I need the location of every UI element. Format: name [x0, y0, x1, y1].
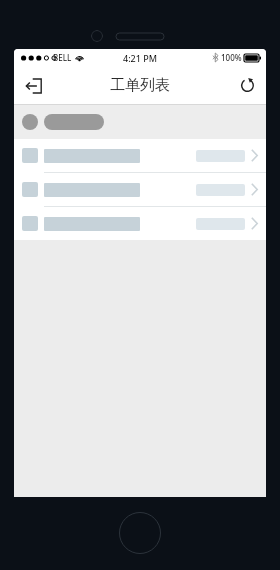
staticText: 工单列表 [110, 76, 170, 95]
button[interactable] [14, 207, 266, 240]
staticText: 4:21 PM [123, 52, 157, 64]
button[interactable] [14, 139, 266, 173]
staticText: 100% [221, 52, 242, 63]
staticText: BELL [53, 52, 72, 63]
button[interactable]: Back [14, 66, 54, 105]
button[interactable] [14, 173, 266, 207]
button[interactable] [14, 105, 266, 139]
button[interactable]: Refresh [228, 66, 266, 105]
